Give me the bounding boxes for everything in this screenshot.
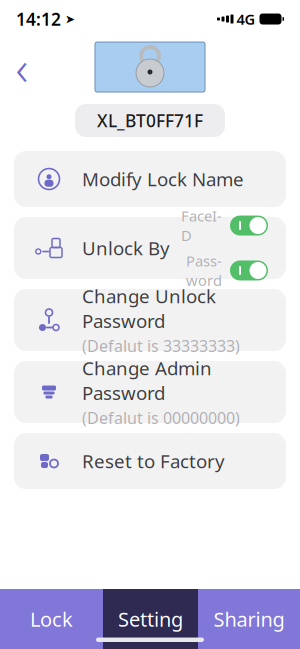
button[interactable]: Change Admin Password	[14, 361, 286, 423]
staticText: (Defalut is 00000000)	[82, 407, 240, 428]
staticText: Lock	[30, 606, 73, 632]
button[interactable]: Back	[0, 45, 44, 89]
staticText: Change Admin Password	[82, 356, 212, 405]
button[interactable]: FaceID toggle	[230, 215, 268, 235]
staticText: (Defalut is 33333333)	[82, 335, 240, 356]
staticText: Setting	[118, 606, 183, 632]
staticText: 4G	[236, 9, 255, 29]
button[interactable]: Sharing	[198, 589, 300, 649]
staticText: 14:12	[16, 7, 61, 30]
button[interactable]: Modify Lock Name	[14, 151, 286, 207]
staticText: FaceID	[181, 206, 222, 245]
staticText: XL_BT0FF71F	[97, 109, 203, 132]
staticText: Sharing	[213, 606, 284, 632]
staticText: Unlock By	[82, 236, 170, 260]
staticText: ‹	[15, 35, 28, 99]
button[interactable]: Change Unlock Password	[14, 289, 286, 351]
button[interactable]: Password toggle	[230, 260, 268, 280]
staticText: Change Unlock Password	[82, 284, 216, 333]
staticText: ➤	[61, 12, 75, 26]
staticText: Modify Lock Name	[82, 167, 244, 191]
staticText: Password	[186, 251, 222, 290]
button[interactable]: Lock	[0, 589, 103, 649]
button[interactable]: Setting	[103, 589, 198, 649]
button[interactable]: Reset to Factory	[14, 433, 286, 489]
staticText: Reset to Factory	[82, 449, 225, 473]
